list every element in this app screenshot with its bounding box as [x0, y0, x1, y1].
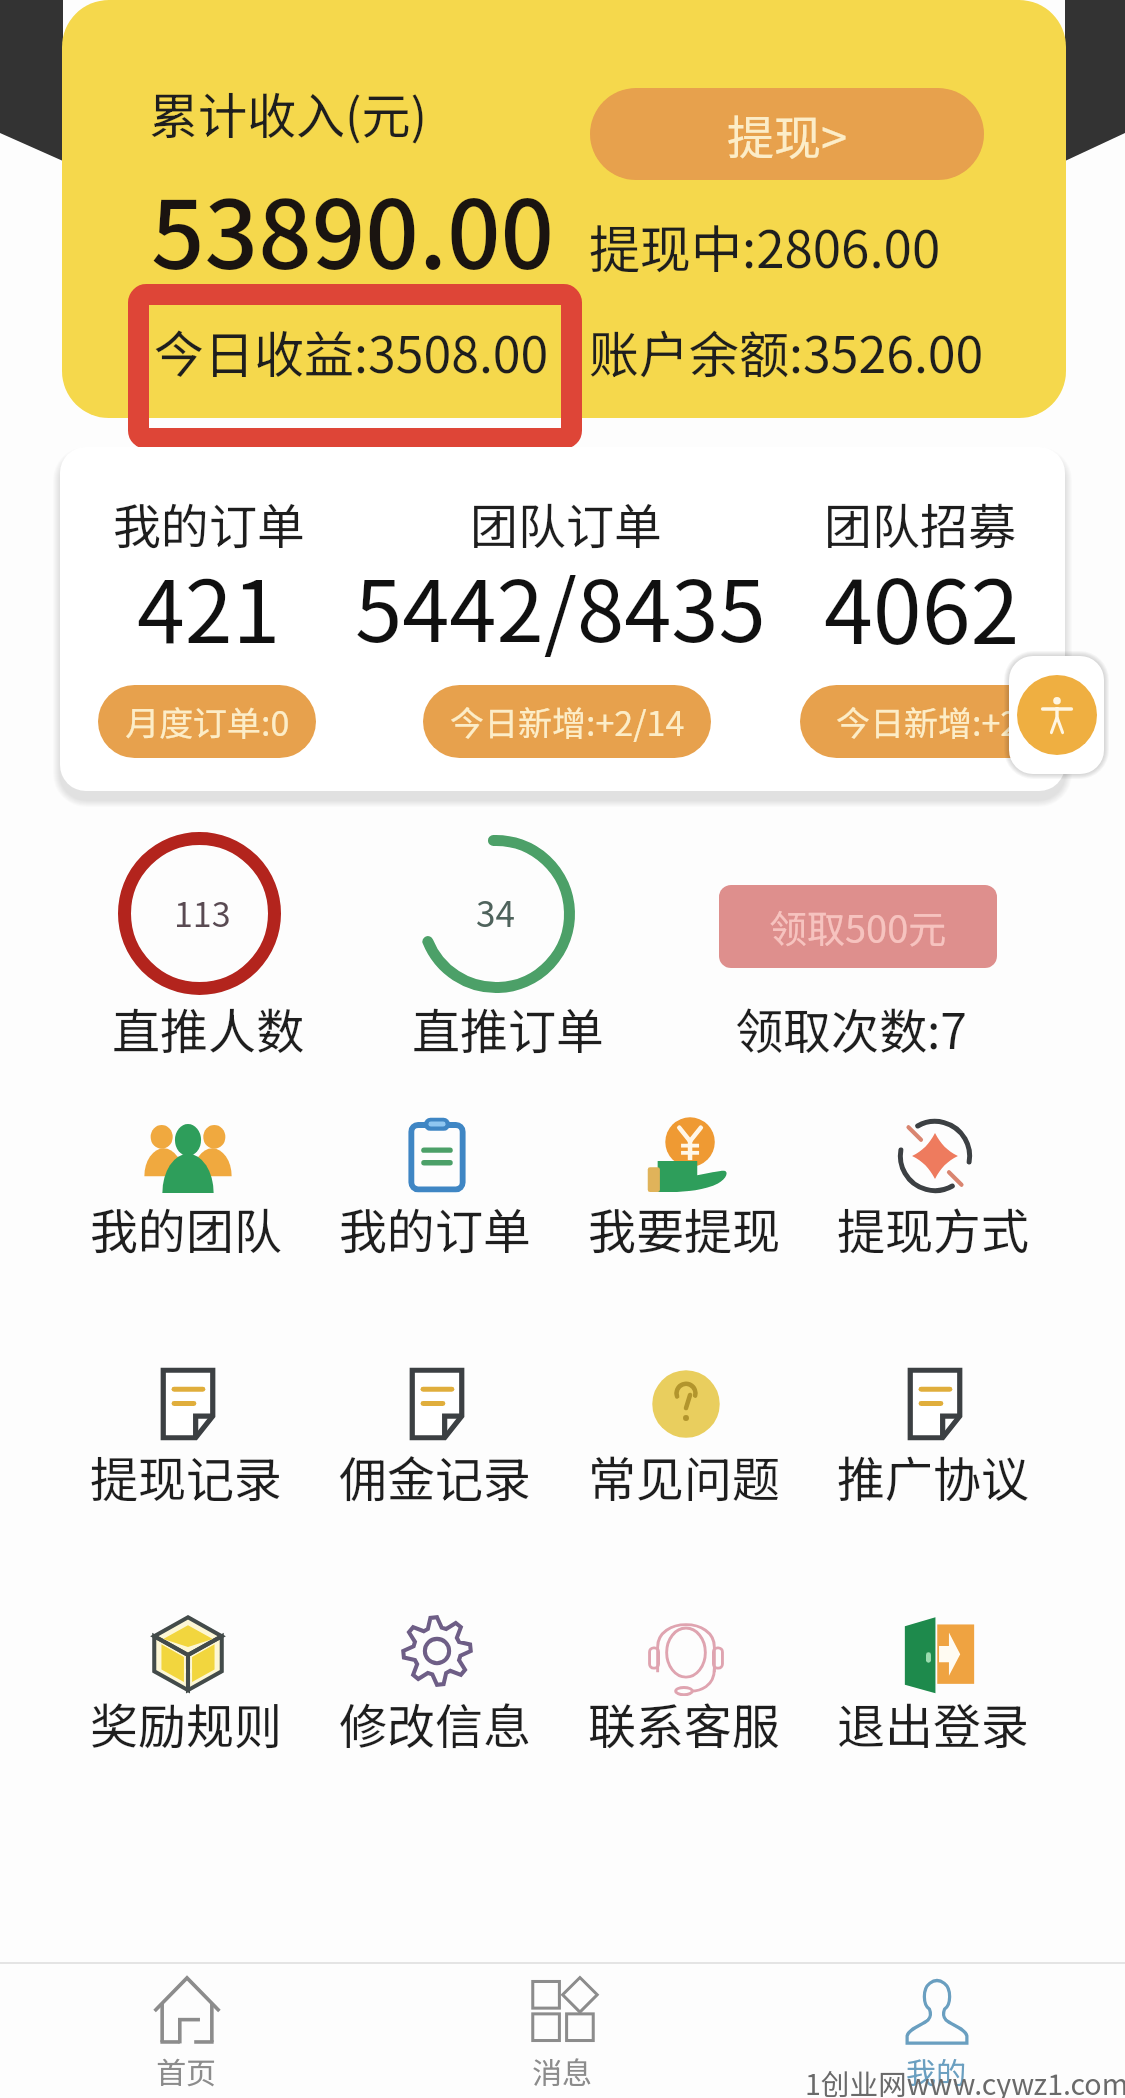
- staticText: 退出登录: [833, 1688, 1033, 1758]
- staticText: 月度订单:0: [125, 697, 290, 746]
- staticText: 领取次数:7: [735, 993, 967, 1063]
- button[interactable]: [77, 1966, 297, 2096]
- button[interactable]: [825, 1096, 1045, 1256]
- staticText: 推广协议: [833, 1441, 1033, 1511]
- staticText: 消息: [482, 2049, 642, 2092]
- button[interactable]: Accessibility: [1009, 656, 1104, 774]
- staticText: 53890.00: [151, 160, 555, 296]
- staticText: 我的订单: [113, 488, 306, 558]
- staticText: 团队招募: [824, 488, 1017, 558]
- staticText: 累计收入(元): [149, 77, 428, 148]
- staticText: 34: [476, 886, 515, 937]
- staticText: 直推订单: [412, 993, 605, 1063]
- button[interactable]: [327, 1591, 547, 1751]
- staticText: 我的: [856, 2049, 1016, 2092]
- button[interactable]: [576, 1591, 796, 1751]
- button[interactable]: [453, 1966, 673, 2096]
- staticText: 今日新增:+2/8: [836, 697, 1052, 746]
- button[interactable]: 月度订单:0: [98, 685, 316, 758]
- staticText: 常见问题: [584, 1441, 784, 1511]
- staticText: 我要提现: [584, 1193, 784, 1263]
- button[interactable]: [825, 1591, 1045, 1751]
- staticText: 团队订单: [470, 488, 663, 558]
- staticText: 提现>: [727, 100, 848, 168]
- staticText: 今日收益:3508.00: [154, 315, 549, 387]
- staticText: 首页: [106, 2049, 266, 2092]
- staticText: 领取500元: [769, 899, 947, 954]
- staticText: 1创业网www.cywz1.com: [805, 2062, 1125, 2098]
- staticText: 佣金记录: [335, 1441, 535, 1511]
- button[interactable]: [78, 1096, 298, 1256]
- staticText: 联系客服: [584, 1688, 784, 1758]
- staticText: 提现中:2806.00: [589, 209, 941, 283]
- button[interactable]: 领取500元: [719, 885, 997, 968]
- staticText: 账户余额:3526.00: [589, 315, 984, 387]
- button[interactable]: [327, 1096, 547, 1256]
- button[interactable]: [825, 1344, 1045, 1504]
- button[interactable]: [78, 1591, 298, 1751]
- staticText: 直推人数: [112, 993, 305, 1063]
- button[interactable]: 今日新增:+2/8: [800, 685, 1088, 758]
- button[interactable]: [576, 1096, 796, 1256]
- staticText: 奖励规则: [86, 1688, 286, 1758]
- staticText: 我的订单: [335, 1193, 535, 1263]
- staticText: 修改信息: [335, 1688, 535, 1758]
- staticText: 4062: [824, 542, 1020, 669]
- staticText: 5442/8435: [355, 543, 766, 666]
- staticText: 今日新增:+2/14: [450, 697, 685, 746]
- button[interactable]: [576, 1344, 796, 1504]
- staticText: 421: [137, 543, 281, 668]
- button[interactable]: [827, 1966, 1047, 2096]
- staticText: 提现方式: [833, 1193, 1033, 1263]
- button[interactable]: 提现>: [590, 88, 984, 180]
- button[interactable]: 今日新增:+2/14: [423, 685, 711, 758]
- button[interactable]: [78, 1344, 298, 1504]
- staticText: 113: [174, 888, 231, 937]
- button[interactable]: [118, 832, 281, 995]
- staticText: 我的团队: [86, 1193, 286, 1263]
- button[interactable]: [327, 1344, 547, 1504]
- staticText: 提现记录: [86, 1441, 286, 1511]
- button[interactable]: [417, 835, 575, 993]
